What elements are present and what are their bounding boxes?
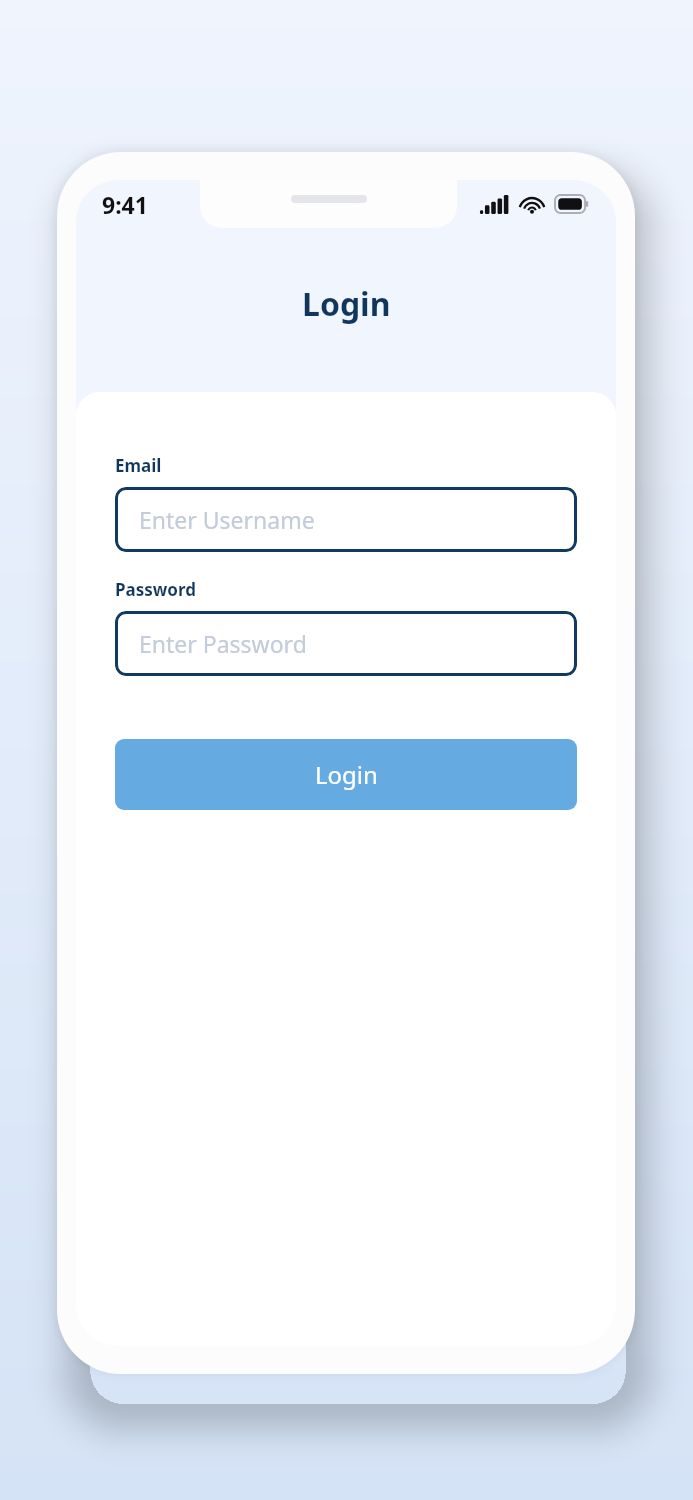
staticText: Login <box>315 758 378 791</box>
staticText: Enter Password <box>139 628 307 659</box>
other: Battery <box>555 195 590 213</box>
button[interactable]: Enter Username <box>115 487 577 552</box>
button[interactable]: Enter Password <box>115 611 577 676</box>
button[interactable]: Login <box>115 739 577 810</box>
staticText: Email <box>115 454 162 477</box>
staticText: Login <box>302 282 391 326</box>
other: Cellular signal <box>480 195 510 214</box>
staticText: Enter Username <box>139 504 315 535</box>
staticText: Password <box>115 578 196 601</box>
other: Wi-Fi <box>519 195 545 214</box>
staticText: 9:41 <box>102 189 148 220</box>
